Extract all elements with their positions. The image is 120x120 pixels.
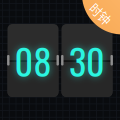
staticText: 30 bbox=[69, 34, 105, 87]
staticText: 时钟 bbox=[88, 5, 112, 23]
staticText: 08 bbox=[14, 34, 51, 87]
